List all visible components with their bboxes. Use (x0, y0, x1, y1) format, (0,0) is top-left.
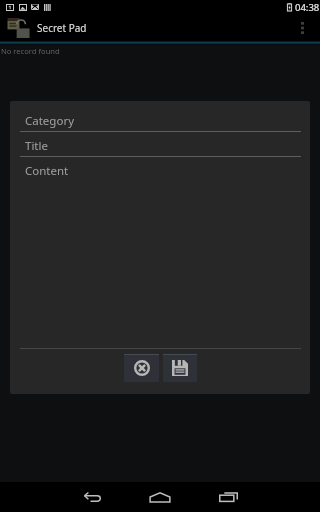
button[interactable]: Home (136, 483, 184, 511)
staticText: Title (25, 138, 48, 154)
button[interactable]: Back (68, 483, 116, 511)
staticText: Secret Pad (37, 21, 87, 35)
button[interactable]: Cancel (124, 354, 159, 382)
button[interactable]: More options (291, 15, 313, 41)
button[interactable]: Save (163, 354, 197, 382)
button[interactable]: Recent apps (204, 483, 252, 511)
staticText: No record found (1, 46, 60, 56)
staticText: 04:38 (295, 1, 320, 14)
staticText: Content (25, 163, 69, 179)
staticText: Category (25, 113, 75, 129)
